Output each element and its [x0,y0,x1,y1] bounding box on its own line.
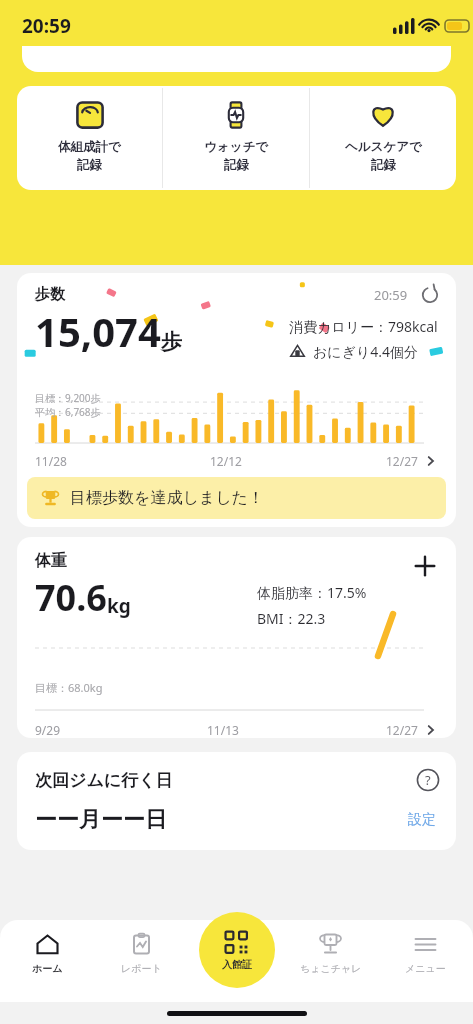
button[interactable]: 体重 [17,537,456,738]
staticText: ちょこチャレ [300,962,362,975]
staticText: おにぎり4.4個分 [313,342,419,361]
button[interactable]: 次回ジムに行く日 [17,752,456,850]
staticText: 歩数 [35,285,65,304]
staticText: ? [425,771,431,789]
staticText: ーー月ーー日 [35,806,167,834]
staticText: 目標歩数を達成しました！ [70,488,264,508]
staticText: 体組成計で [58,139,121,155]
staticText: 12/12 [210,453,242,469]
staticText: 設定 [408,811,436,829]
button[interactable]: 体重を追加 [410,551,440,581]
button[interactable]: 更新 [420,285,440,305]
button[interactable]: ヘルプ [416,768,440,792]
staticText: 目標：9,200歩 [35,391,101,405]
button[interactable]: ホーム [0,920,94,1002]
staticText: 11/28 [35,453,67,469]
staticText: 平均：6,768歩 [35,405,101,419]
staticText: ヘルスケアで [345,139,422,155]
staticText: 20:59 [374,286,408,304]
button[interactable]: 歩数 [17,273,456,527]
staticText: メニュー [405,962,446,975]
staticText: 12/27 [386,453,418,469]
button[interactable]: 入館証 [199,912,275,988]
staticText: 9/29 [35,722,61,738]
button[interactable]: 目標歩数を達成しました！ [27,477,446,519]
staticText: 記録 [224,157,249,173]
staticText: kg [107,593,131,619]
staticText: 入館証 [222,958,252,971]
button[interactable]: ヘルスケアで [310,86,456,190]
staticText: 体脂肪率：17.5% [257,583,367,602]
staticText: 記録 [371,157,396,173]
staticText: 消費カロリー：798kcal [289,317,438,336]
button[interactable]: メニュー [378,920,473,1002]
staticText: ウォッチで [204,139,268,155]
staticText: 目標：68.0kg [35,680,103,695]
staticText: 12/27 [386,722,418,738]
button[interactable]: ウォッチで [163,86,309,190]
staticText: 記録 [77,157,102,173]
staticText: 20:59 [22,13,71,39]
staticText: 次回ジムに行く日 [35,770,173,791]
staticText: 歩 [161,329,182,355]
staticText: 11/13 [207,722,239,738]
staticText: レポート [121,962,162,975]
button[interactable]: 体組成計で [17,86,162,190]
staticText: ホーム [32,962,63,975]
button[interactable]: 設定 [404,807,440,833]
staticText: BMI：22.3 [257,609,326,628]
staticText: 15,074 [35,304,161,358]
button[interactable]: ちょこチャレ [283,920,378,1002]
staticText: 70.6 [35,573,107,622]
staticText: 体重 [35,551,67,571]
button[interactable]: レポート [94,920,188,1002]
